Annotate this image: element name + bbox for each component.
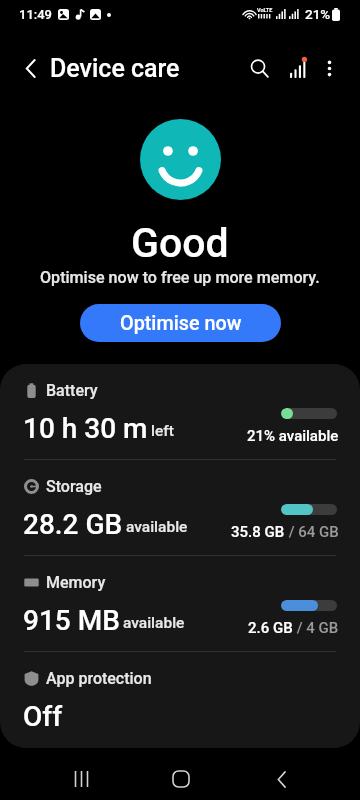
staticText: Off: [23, 700, 63, 733]
button[interactable]: Memory: [0, 556, 360, 651]
staticText: / 4 GB: [293, 619, 339, 637]
button[interactable]: Recents: [53, 755, 109, 800]
button[interactable]: Home: [153, 755, 209, 800]
button[interactable]: Storage: [0, 460, 360, 555]
staticText: available: [123, 614, 185, 632]
button[interactable]: Navigate up: [6, 44, 54, 92]
staticText: 915 MB: [23, 604, 120, 637]
staticText: / 64 GB: [285, 523, 339, 541]
staticText: Optimise now: [120, 312, 242, 335]
staticText: Storage: [46, 477, 102, 496]
button[interactable]: Battery: [0, 364, 360, 459]
button[interactable]: Back: [253, 755, 309, 800]
staticText: 21%: [305, 6, 331, 22]
staticText: Good: [131, 219, 229, 267]
staticText: 2.6 GB: [248, 619, 293, 637]
staticText: Memory: [46, 573, 106, 592]
staticText: VoLTE: [257, 7, 273, 13]
staticText: Battery: [46, 381, 98, 400]
staticText: 21% available: [247, 427, 339, 445]
button[interactable]: More options: [309, 48, 349, 88]
button[interactable]: Optimise now: [80, 304, 281, 342]
staticText: 10 h 30 m: [23, 412, 148, 445]
staticText: Optimise now to free up more memory.: [40, 268, 320, 287]
button[interactable]: App protection: [0, 652, 360, 748]
button[interactable]: Search: [237, 46, 281, 90]
staticText: 11:49: [19, 7, 52, 22]
staticText: 35.8 GB: [231, 523, 285, 541]
staticText: App protection: [46, 669, 152, 688]
staticText: left: [151, 422, 174, 440]
button[interactable]: Usage statistics: [277, 48, 317, 88]
staticText: 28.2 GB: [23, 508, 123, 541]
staticText: available: [126, 518, 188, 536]
staticText: Device care: [50, 54, 180, 83]
